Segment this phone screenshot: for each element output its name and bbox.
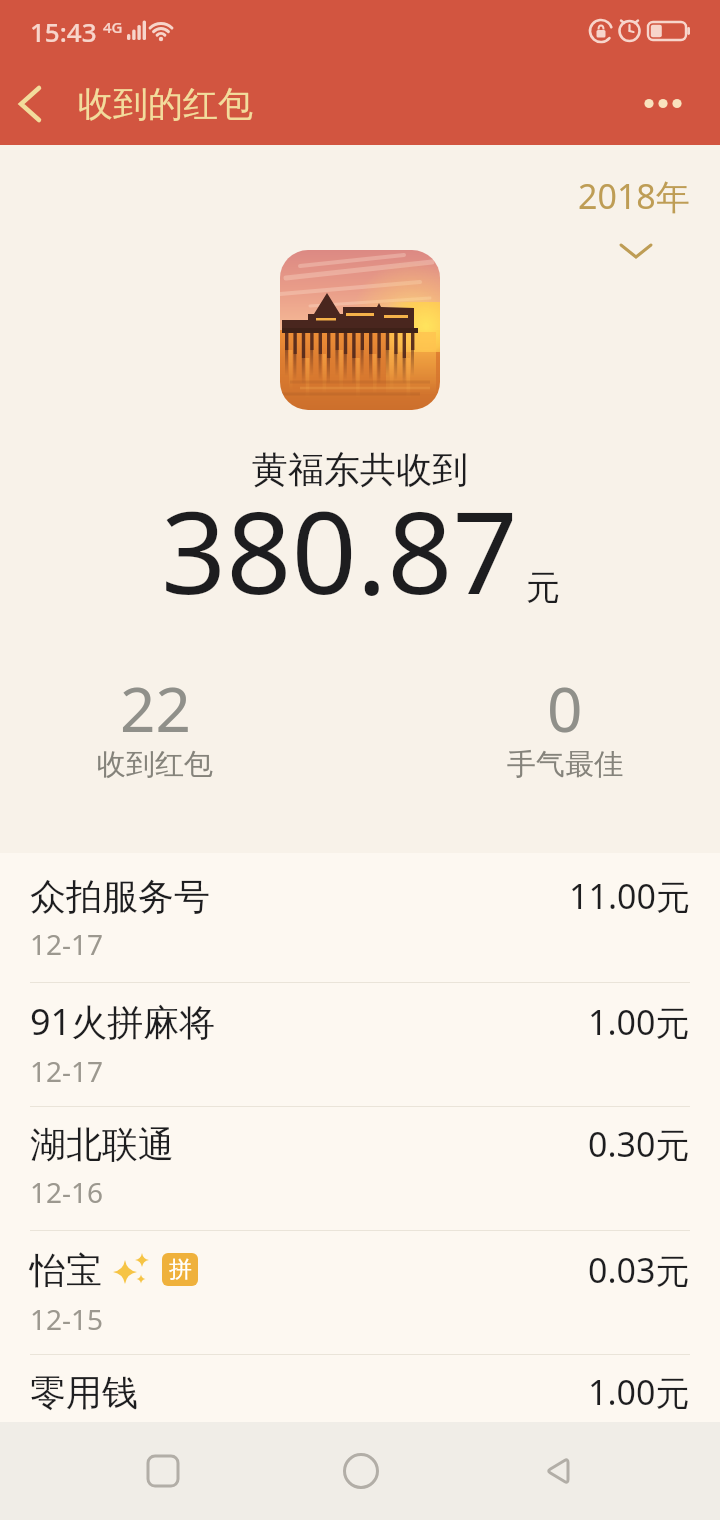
staticText: 12-17 xyxy=(30,925,104,963)
button[interactable]: 91火拼麻将 xyxy=(0,983,720,1107)
staticText: 收到红包 xyxy=(97,746,213,783)
staticText: 12-16 xyxy=(30,1173,104,1211)
button[interactable]: 怡宝 xyxy=(0,1231,720,1355)
staticText: 12-17 xyxy=(30,1052,104,1090)
button[interactable]: 2018年 xyxy=(578,173,690,219)
staticText: 0.30元 xyxy=(588,1121,690,1167)
button[interactable] xyxy=(64,1422,262,1520)
staticText: 12-15 xyxy=(30,1300,104,1338)
staticText: 1.00元 xyxy=(588,999,690,1045)
button[interactable] xyxy=(644,62,720,145)
staticText: 手气最佳 xyxy=(507,746,623,783)
staticText: 0 xyxy=(547,666,583,750)
staticText: 怡宝 xyxy=(30,1245,112,1294)
staticText: 黄福东共收到 xyxy=(252,447,468,492)
button[interactable]: 零用钱 xyxy=(0,1355,720,1479)
staticText: 380.87 xyxy=(161,472,518,627)
staticText: 22 xyxy=(120,666,191,750)
button[interactable]: 众拍服务号 xyxy=(0,859,720,983)
staticText: 1.00元 xyxy=(588,1369,690,1415)
staticText: 4G xyxy=(103,17,123,37)
staticText: 91火拼麻将 xyxy=(30,997,216,1046)
button[interactable]: 湖北联通 xyxy=(0,1107,720,1231)
button[interactable] xyxy=(620,243,652,259)
staticText: 湖北联通 xyxy=(30,1122,174,1167)
staticText: 拼 xyxy=(169,1255,192,1284)
staticText: 元 xyxy=(526,566,560,609)
staticText: 15:43 xyxy=(30,14,97,49)
staticText: 11.00元 xyxy=(569,873,690,919)
staticText: 众拍服务号 xyxy=(30,874,210,919)
staticText: 0.03元 xyxy=(588,1247,690,1293)
button[interactable] xyxy=(0,62,60,145)
button[interactable] xyxy=(262,1422,459,1520)
staticText: 收到的红包 xyxy=(78,82,253,126)
staticText: 零用钱 xyxy=(30,1370,138,1415)
button[interactable] xyxy=(459,1422,656,1520)
